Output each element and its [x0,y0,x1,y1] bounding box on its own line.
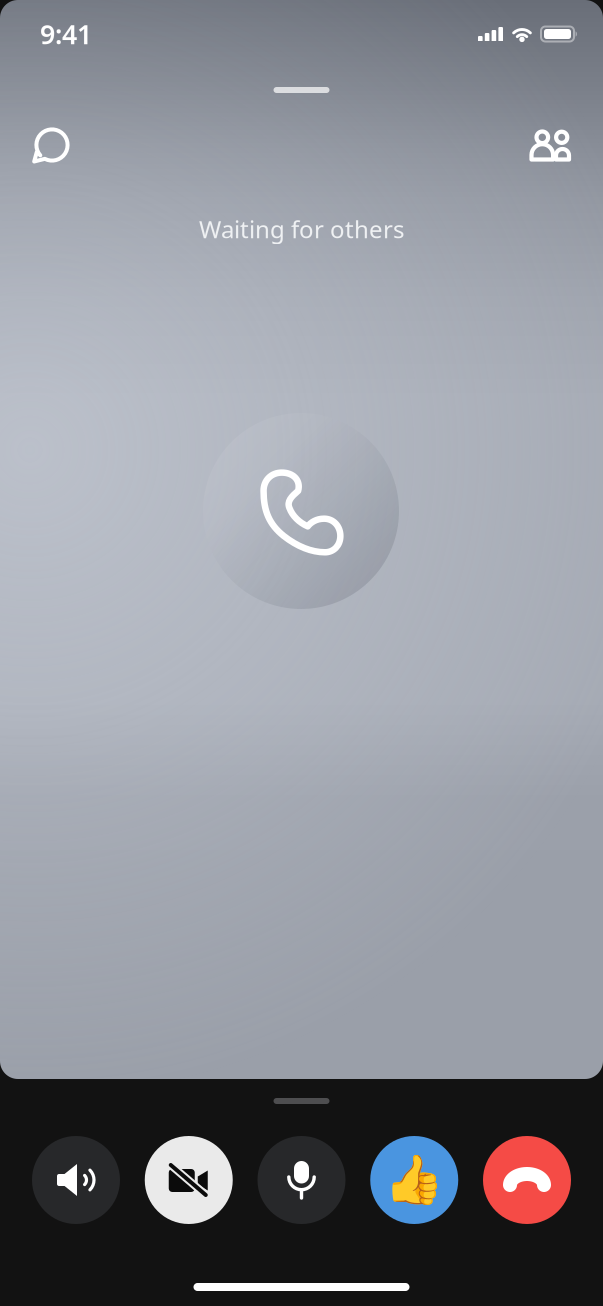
button[interactable]: Participants [517,114,587,176]
button[interactable]: Messages [16,115,86,177]
button[interactable]: End call [483,1136,571,1224]
staticText: 👍 [384,1153,444,1207]
button[interactable]: React [370,1136,458,1224]
staticText: Waiting for others [199,213,404,245]
button[interactable]: Mute [257,1136,345,1224]
button[interactable]: Turn camera on [145,1136,233,1224]
staticText: 9:41 [40,16,92,52]
button[interactable]: Speaker [32,1136,120,1224]
